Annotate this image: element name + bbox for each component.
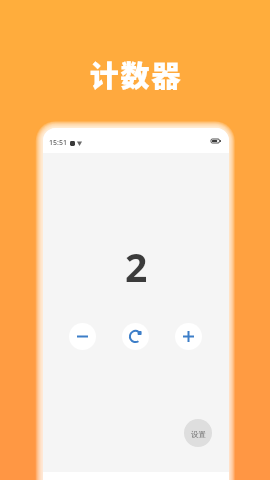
staticText: 设置 xyxy=(191,430,206,439)
staticText: 2 xyxy=(125,240,148,293)
button[interactable]: 设置 xyxy=(184,419,212,447)
staticText: 计数器 xyxy=(1,53,270,95)
button[interactable]: Increase xyxy=(175,323,202,350)
button[interactable]: Reset xyxy=(122,323,149,350)
staticText: 15:51 xyxy=(49,138,67,148)
button[interactable]: Decrease xyxy=(69,323,96,350)
